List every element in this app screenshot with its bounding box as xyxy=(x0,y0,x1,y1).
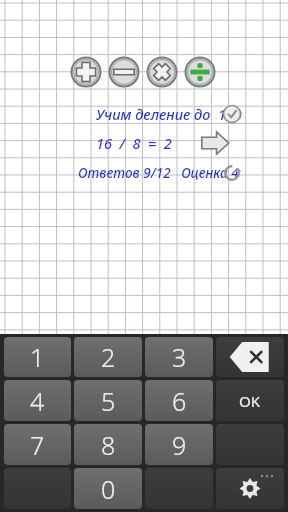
staticText: 8 xyxy=(101,428,116,462)
button[interactable]: Restart xyxy=(222,163,242,183)
staticText: 0 xyxy=(101,472,116,506)
staticText: Ответов 9/12 Оценка 4 xyxy=(78,164,239,182)
button[interactable]: Multiply xyxy=(146,56,178,88)
button[interactable]: 1 xyxy=(4,337,71,377)
staticText: 16 / 8 = 2 xyxy=(96,133,172,153)
staticText: 4 xyxy=(30,384,45,418)
staticText: 6 xyxy=(172,384,187,418)
button[interactable]: Backspace xyxy=(216,337,284,377)
button[interactable]: 2 xyxy=(74,337,142,377)
staticText: 1 xyxy=(30,340,45,374)
button[interactable]: Settings xyxy=(216,468,284,509)
staticText: OK xyxy=(239,391,261,411)
button[interactable]: 7 xyxy=(4,424,71,465)
button[interactable]: Check answer xyxy=(222,104,242,124)
staticText: 9 xyxy=(172,428,187,462)
button[interactable]: 3 xyxy=(145,337,213,377)
button[interactable]: 6 xyxy=(145,380,213,421)
button[interactable]: 4 xyxy=(4,380,71,421)
staticText: 7 xyxy=(30,428,45,462)
staticText: 2 xyxy=(101,340,116,374)
staticText: Учим деление до 100 xyxy=(96,104,242,124)
button[interactable]: Plus xyxy=(70,56,102,88)
button[interactable]: Divide xyxy=(184,56,216,88)
button[interactable]: 0 xyxy=(74,468,142,509)
button[interactable]: 5 xyxy=(74,380,142,421)
staticText: 3 xyxy=(172,340,187,374)
staticText: 5 xyxy=(101,384,116,418)
button[interactable]: 9 xyxy=(145,424,213,465)
button[interactable]: Next xyxy=(200,132,230,154)
button[interactable]: OK xyxy=(216,380,284,421)
button[interactable]: Minus xyxy=(108,56,140,88)
button[interactable]: 8 xyxy=(74,424,142,465)
